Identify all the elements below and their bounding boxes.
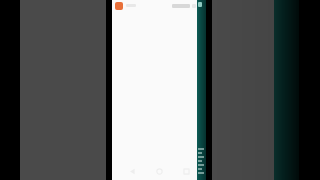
- button[interactable]: Home: [152, 164, 166, 178]
- button[interactable]: Recents: [179, 164, 193, 178]
- button[interactable]: Account: [115, 2, 123, 10]
- button[interactable]: Open side panel: [197, 0, 206, 180]
